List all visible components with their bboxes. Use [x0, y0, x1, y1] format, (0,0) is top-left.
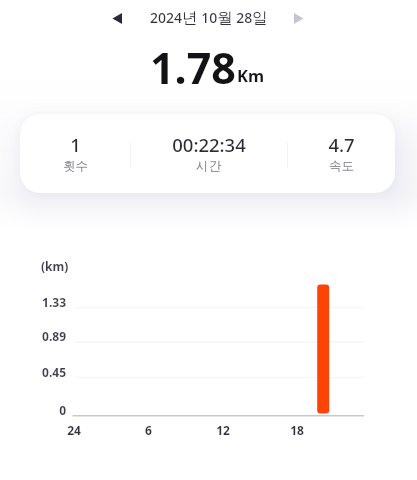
staticText: (km)	[41, 258, 69, 274]
staticText: 4.7	[328, 132, 355, 157]
staticText: 00:22:34	[172, 132, 246, 157]
button[interactable]: 1	[20, 114, 130, 192]
staticText: 횟수	[63, 158, 88, 174]
staticText: 시간	[196, 158, 221, 174]
staticText: 0.45	[42, 364, 66, 380]
staticText: 18	[290, 422, 304, 438]
staticText: Km	[237, 64, 265, 86]
staticText: 6	[145, 422, 152, 438]
staticText: 1	[70, 132, 81, 157]
staticText: 0	[59, 402, 66, 418]
staticText: 12	[216, 422, 230, 438]
button[interactable]: Previous day	[102, 3, 132, 33]
staticText: 2024년 10월 28일	[150, 8, 268, 28]
staticText: 1.33	[42, 294, 66, 310]
staticText: 속도	[329, 158, 354, 174]
button[interactable]: 4.7	[287, 114, 395, 192]
staticText: 0.89	[42, 328, 66, 344]
staticText: 24	[67, 422, 81, 438]
button[interactable]: 00:22:34	[130, 114, 287, 192]
staticText: 1.78	[150, 38, 236, 90]
button[interactable]: Next day	[283, 3, 313, 33]
